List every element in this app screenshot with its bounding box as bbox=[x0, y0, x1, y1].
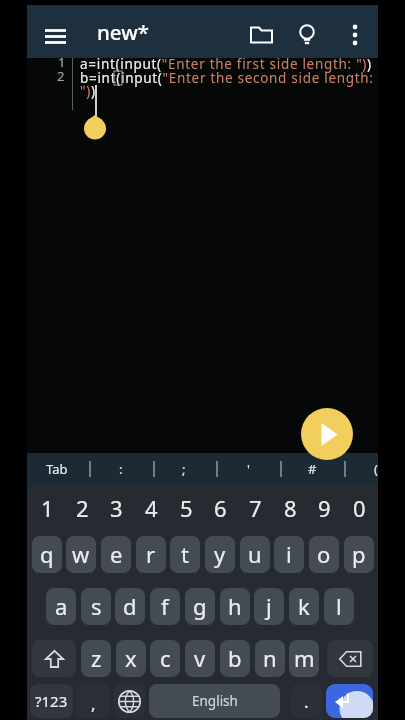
staticText: l bbox=[336, 591, 342, 621]
button[interactable]: 4 bbox=[134, 488, 168, 528]
staticText: 8 bbox=[284, 493, 297, 523]
staticText: ; bbox=[182, 460, 186, 478]
button[interactable]: 9 bbox=[307, 488, 341, 528]
button[interactable]: j bbox=[254, 588, 284, 625]
staticText: ?123 bbox=[35, 691, 68, 711]
button[interactable]: k bbox=[289, 588, 319, 625]
button[interactable] bbox=[301, 408, 353, 460]
button[interactable] bbox=[35, 21, 75, 51]
staticText: , bbox=[91, 692, 96, 715]
button[interactable]: # bbox=[290, 453, 334, 485]
button[interactable]: n bbox=[255, 640, 285, 677]
staticText: ")) bbox=[80, 82, 96, 100]
staticText: z bbox=[91, 643, 102, 673]
staticText: ( bbox=[374, 460, 378, 478]
button[interactable]: , bbox=[76, 684, 110, 718]
button[interactable] bbox=[339, 20, 371, 50]
staticText: 5 bbox=[180, 493, 193, 523]
button[interactable]: English bbox=[149, 684, 280, 718]
staticText: p bbox=[352, 539, 366, 569]
staticText: y bbox=[214, 539, 226, 569]
button[interactable]: 6 bbox=[203, 488, 237, 528]
staticText: x bbox=[125, 643, 137, 673]
staticText: ' bbox=[247, 460, 250, 478]
button[interactable]: ' bbox=[226, 453, 270, 485]
staticText: r bbox=[146, 539, 156, 569]
button[interactable]: x bbox=[116, 640, 146, 677]
button[interactable]: u bbox=[240, 536, 270, 573]
staticText: 3 bbox=[110, 493, 123, 523]
button[interactable]: e bbox=[101, 536, 131, 573]
staticText: i bbox=[286, 539, 292, 569]
staticText: 9 bbox=[318, 493, 331, 523]
button[interactable]: m bbox=[289, 640, 319, 677]
button[interactable] bbox=[32, 640, 76, 677]
button[interactable]: 7 bbox=[238, 488, 272, 528]
staticText: b bbox=[228, 643, 242, 673]
button[interactable]: : bbox=[99, 453, 143, 485]
button[interactable]: a bbox=[46, 588, 76, 625]
staticText: 4 bbox=[145, 493, 158, 523]
button[interactable]: y bbox=[205, 536, 235, 573]
staticText: new* bbox=[97, 18, 149, 46]
button[interactable]: h bbox=[220, 588, 250, 625]
staticText: t bbox=[181, 539, 189, 569]
staticText: . bbox=[304, 690, 309, 713]
button[interactable]: 1 bbox=[30, 488, 64, 528]
staticText: e bbox=[110, 539, 123, 569]
staticText: # bbox=[308, 460, 317, 478]
button[interactable]: v bbox=[185, 640, 215, 677]
staticText: 1 bbox=[58, 53, 66, 71]
button[interactable]: ( bbox=[354, 453, 378, 485]
staticText: a bbox=[55, 591, 68, 621]
staticText: h bbox=[228, 591, 242, 621]
staticText: 2 bbox=[57, 67, 65, 85]
button[interactable] bbox=[327, 640, 373, 677]
button[interactable]: ; bbox=[162, 453, 206, 485]
staticText: 6 bbox=[214, 493, 227, 523]
button[interactable]: 3 bbox=[99, 488, 133, 528]
staticText: s bbox=[91, 591, 102, 621]
button[interactable]: 5 bbox=[169, 488, 203, 528]
button[interactable]: f bbox=[150, 588, 180, 625]
button[interactable] bbox=[326, 684, 373, 718]
button[interactable]: t bbox=[170, 536, 200, 573]
staticText: j bbox=[266, 591, 272, 621]
staticText: w bbox=[72, 539, 90, 569]
button[interactable]: 8 bbox=[273, 488, 307, 528]
button[interactable] bbox=[245, 20, 277, 50]
staticText: b=int(input("Enter the second side lengt… bbox=[80, 69, 374, 87]
button[interactable]: r bbox=[136, 536, 166, 573]
staticText: 7 bbox=[249, 493, 262, 523]
button[interactable]: d bbox=[115, 588, 145, 625]
button[interactable]: q bbox=[32, 536, 62, 573]
button[interactable]: b bbox=[220, 640, 250, 677]
staticText: g bbox=[193, 591, 207, 621]
staticText: : bbox=[119, 460, 123, 478]
button[interactable]: c bbox=[150, 640, 180, 677]
staticText: u bbox=[248, 539, 262, 569]
staticText: m bbox=[294, 643, 315, 673]
staticText: English bbox=[192, 692, 238, 710]
button[interactable]: i bbox=[274, 536, 304, 573]
staticText: 2 bbox=[76, 493, 89, 523]
staticText: 1 bbox=[41, 493, 54, 523]
button[interactable]: g bbox=[185, 588, 215, 625]
staticText: o bbox=[317, 539, 331, 569]
button[interactable]: s bbox=[81, 588, 111, 625]
button[interactable]: 2 bbox=[65, 488, 99, 528]
button[interactable] bbox=[114, 684, 145, 718]
staticText: a=int(input("Enter the first side length… bbox=[80, 55, 372, 73]
button[interactable]: w bbox=[66, 536, 96, 573]
button[interactable]: p bbox=[344, 536, 374, 573]
staticText: q bbox=[40, 539, 54, 569]
button[interactable]: Tab bbox=[35, 453, 79, 485]
button[interactable]: ?123 bbox=[30, 684, 73, 718]
button[interactable]: l bbox=[324, 588, 354, 625]
button[interactable]: 0 bbox=[342, 488, 376, 528]
button[interactable]: . bbox=[291, 684, 322, 718]
button[interactable]: o bbox=[309, 536, 339, 573]
staticText: 0 bbox=[353, 493, 366, 523]
button[interactable]: z bbox=[81, 640, 111, 677]
button[interactable] bbox=[291, 20, 323, 50]
